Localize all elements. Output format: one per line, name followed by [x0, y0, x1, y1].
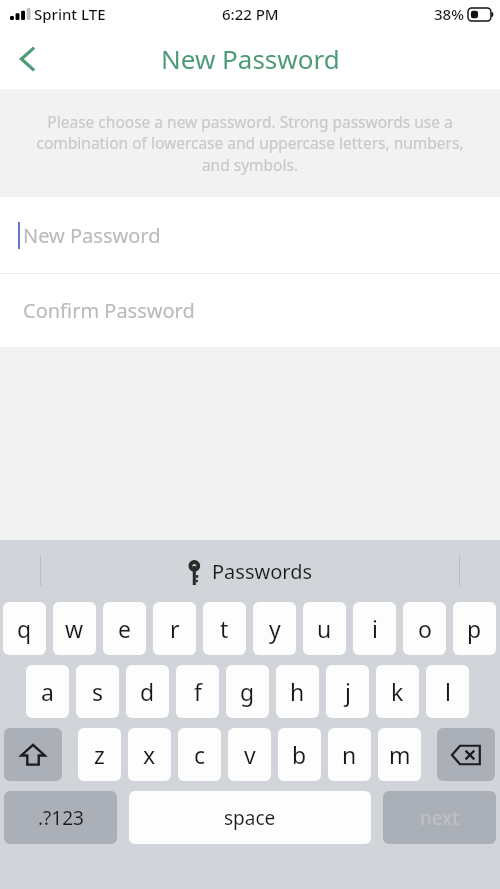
staticText: n: [342, 739, 357, 770]
staticText: New Password: [161, 41, 340, 76]
staticText: Passwords: [212, 558, 313, 585]
button[interactable]: t: [203, 602, 246, 655]
button[interactable]: k: [376, 665, 419, 718]
button[interactable]: r: [153, 602, 196, 655]
button[interactable]: v: [228, 728, 271, 781]
staticText: c: [194, 739, 206, 770]
button[interactable]: q: [3, 602, 46, 655]
button[interactable]: e: [103, 602, 146, 655]
button[interactable]: d: [126, 665, 169, 718]
staticText: .?123: [38, 805, 84, 831]
button[interactable]: x: [128, 728, 171, 781]
staticText: v: [244, 739, 256, 770]
button[interactable]: z: [78, 728, 121, 781]
button[interactable]: b: [278, 728, 321, 781]
staticText: y: [269, 613, 281, 644]
staticText: b: [292, 739, 307, 770]
staticText: f: [194, 676, 202, 707]
staticText: k: [391, 676, 404, 707]
button[interactable]: p: [453, 602, 496, 655]
staticText: 38%: [434, 4, 464, 24]
staticText: Please choose a new password. Strong pas…: [26, 111, 474, 176]
staticText: o: [418, 613, 432, 644]
staticText: 6:22 PM: [222, 4, 279, 24]
button[interactable]: f: [176, 665, 219, 718]
staticText: space: [224, 805, 276, 831]
button[interactable]: j: [326, 665, 369, 718]
button[interactable]: h: [276, 665, 319, 718]
staticText: g: [240, 676, 255, 707]
staticText: l: [445, 676, 451, 707]
button[interactable]: u: [303, 602, 346, 655]
staticText: r: [170, 613, 180, 644]
button[interactable]: c: [178, 728, 221, 781]
button[interactable]: Back: [0, 31, 56, 87]
button[interactable]: i: [353, 602, 396, 655]
staticText: x: [143, 739, 156, 770]
staticText: a: [41, 676, 54, 707]
staticText: q: [17, 613, 32, 644]
button[interactable]: Shift: [4, 728, 62, 781]
button[interactable]: y: [253, 602, 296, 655]
button[interactable]: next: [383, 791, 496, 844]
button[interactable]: s: [76, 665, 119, 718]
button[interactable]: g: [226, 665, 269, 718]
button[interactable]: space: [129, 791, 371, 844]
button[interactable]: Passwords: [0, 540, 500, 602]
staticText: z: [94, 739, 105, 770]
staticText: j: [345, 676, 351, 707]
button[interactable]: n: [328, 728, 371, 781]
button[interactable]: m: [378, 728, 421, 781]
staticText: New Password: [23, 222, 161, 249]
button[interactable]: Backspace: [437, 728, 495, 781]
staticText: s: [92, 676, 104, 707]
button[interactable]: w: [53, 602, 96, 655]
staticText: t: [220, 613, 229, 644]
staticText: u: [317, 613, 332, 644]
staticText: h: [290, 676, 305, 707]
staticText: i: [372, 613, 378, 644]
staticText: next: [420, 805, 459, 831]
button[interactable]: Confirm Password: [0, 274, 500, 347]
button[interactable]: .?123: [4, 791, 117, 844]
button[interactable]: l: [426, 665, 469, 718]
button[interactable]: o: [403, 602, 446, 655]
staticText: w: [65, 613, 84, 644]
staticText: m: [389, 739, 411, 770]
staticText: Sprint LTE: [34, 4, 106, 24]
staticText: Confirm Password: [23, 297, 195, 324]
button[interactable]: a: [26, 665, 69, 718]
staticText: p: [467, 613, 482, 644]
button[interactable]: New Password: [0, 197, 500, 273]
staticText: e: [118, 613, 131, 644]
staticText: d: [140, 676, 155, 707]
